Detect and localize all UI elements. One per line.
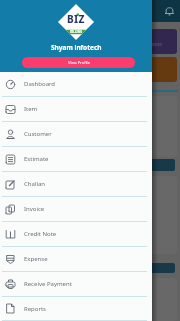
button[interactable]: Reports xyxy=(0,297,152,321)
staticText: Dashboard xyxy=(24,80,56,88)
staticText: Credit Note xyxy=(24,230,57,238)
staticText: Receive Payment xyxy=(24,280,72,288)
button[interactable]: Estimate xyxy=(0,147,152,172)
staticText: Estimate xyxy=(24,155,49,163)
button[interactable]: Challan xyxy=(0,172,152,197)
button[interactable]: Expense xyxy=(0,247,152,272)
staticText: Expense xyxy=(24,255,48,263)
button[interactable]: Customer xyxy=(0,122,152,147)
staticText: BIZ xyxy=(67,12,85,26)
staticText: Challan xyxy=(24,180,46,188)
staticText: Item xyxy=(24,105,38,113)
staticText: ANCES xyxy=(151,42,162,47)
button[interactable]: Receive Payment xyxy=(0,272,152,297)
button[interactable]: Invoice xyxy=(0,197,152,222)
staticText: BILLING xyxy=(70,30,83,34)
button[interactable]: View Profile xyxy=(22,57,135,68)
button[interactable]: Credit Note xyxy=(0,222,152,247)
button[interactable]: Dashboard xyxy=(0,72,152,97)
staticText: Reports xyxy=(24,305,46,313)
staticText: Customer xyxy=(24,130,52,138)
staticText: View Profile xyxy=(68,60,90,65)
button[interactable]: Item xyxy=(0,97,152,122)
staticText: Shyam infotech xyxy=(51,43,102,52)
staticText: Invoice xyxy=(24,205,45,213)
